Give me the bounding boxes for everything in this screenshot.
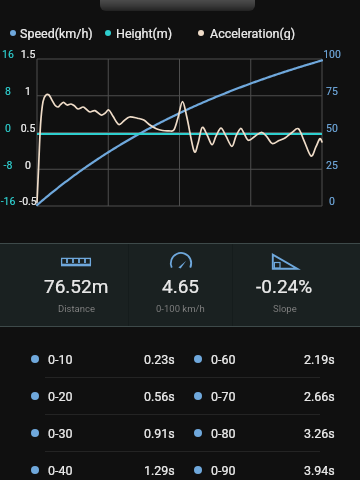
staticText: 0-80 — [211, 426, 236, 441]
button[interactable]: Height(m) — [105, 26, 173, 40]
staticText: 25 — [312, 159, 352, 171]
staticText: Distance — [58, 303, 95, 314]
staticText: 0-40 — [48, 463, 73, 478]
staticText: 1.5 — [8, 48, 48, 60]
button[interactable]: 0-10 — [0, 341, 180, 377]
staticText: 1 — [8, 85, 48, 97]
staticText: 0.5 — [8, 122, 48, 134]
button[interactable]: Slope — [233, 244, 336, 326]
staticText: Speed(km/h) — [20, 26, 93, 40]
staticText: 3.94s — [304, 463, 335, 478]
button[interactable]: Acceleration time — [129, 244, 232, 326]
button[interactable]: 0-80 — [180, 415, 360, 451]
staticText: Acceleration(g) — [210, 26, 296, 40]
staticText: 8 — [0, 85, 28, 97]
staticText: 4.65 — [162, 275, 200, 297]
button[interactable]: Distance — [24, 244, 128, 326]
staticText: -16 — [0, 195, 28, 207]
button[interactable]: 0-90 — [180, 452, 360, 480]
staticText: 0-10 — [48, 352, 73, 367]
staticText: -0.5 — [8, 195, 48, 207]
button[interactable]: 0-20 — [0, 378, 180, 414]
button[interactable]: 0-60 — [180, 341, 360, 377]
staticText: 2.19s — [304, 352, 335, 367]
button[interactable]: Acceleration(g) — [198, 26, 296, 40]
staticText: 0.23s — [144, 352, 175, 367]
staticText: Slope — [273, 303, 297, 314]
staticText: 0 — [8, 159, 48, 171]
button[interactable]: 0-70 — [180, 378, 360, 414]
staticText: 0 — [0, 122, 28, 134]
staticText: 100 — [312, 48, 352, 60]
staticText: -8 — [0, 159, 28, 171]
staticText: 3.26s — [304, 426, 335, 441]
staticText: 0.56s — [144, 389, 175, 404]
staticText: 50 — [312, 122, 352, 134]
staticText: 1.29s — [144, 463, 175, 478]
staticText: 0 — [312, 195, 352, 207]
button[interactable]: Speed(km/h) — [10, 26, 93, 40]
staticText: 2.66s — [304, 389, 335, 404]
staticText: 0-20 — [48, 389, 73, 404]
staticText: 0-60 — [211, 352, 236, 367]
staticText: 0-100 km/h — [156, 303, 205, 314]
staticText: 0.91s — [144, 426, 175, 441]
button[interactable]: 0-30 — [0, 415, 180, 451]
staticText: 0-30 — [48, 426, 73, 441]
button[interactable]: 0-40 — [0, 452, 180, 480]
staticText: 75 — [312, 85, 352, 97]
staticText: 76.52m — [44, 275, 109, 297]
staticText: Height(m) — [116, 26, 173, 40]
staticText: 0-70 — [211, 389, 236, 404]
staticText: 0-90 — [211, 463, 236, 478]
staticText: -0.24% — [256, 275, 313, 297]
staticText: 16 — [0, 48, 28, 60]
